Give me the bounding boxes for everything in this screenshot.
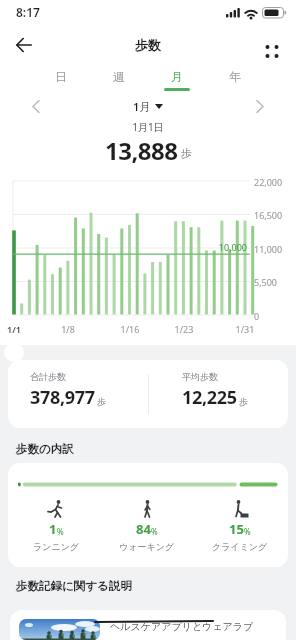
staticText: ランニング bbox=[33, 541, 80, 552]
button[interactable] bbox=[250, 96, 270, 116]
staticText: 1/16 bbox=[110, 323, 150, 335]
staticText: 月 bbox=[171, 69, 183, 84]
button[interactable]: 1月 bbox=[0, 96, 296, 116]
staticText: 12,225 bbox=[182, 385, 237, 410]
staticText: 1月1日 bbox=[0, 120, 296, 134]
button[interactable]: 年 bbox=[206, 62, 264, 90]
staticText: 歩 bbox=[181, 146, 192, 160]
staticText: 1/8 bbox=[48, 323, 88, 335]
staticText: 22,000 bbox=[254, 176, 283, 188]
staticText: 歩 bbox=[97, 396, 106, 407]
button[interactable] bbox=[258, 38, 286, 64]
staticText: 歩数記録に関する説明 bbox=[16, 579, 132, 593]
staticText: % bbox=[57, 526, 64, 537]
staticText: 0 bbox=[254, 310, 260, 322]
staticText: 合計歩数 bbox=[30, 371, 66, 382]
staticText: 1 bbox=[49, 520, 57, 538]
staticText: % bbox=[244, 526, 251, 537]
staticText: 13,888 bbox=[105, 134, 178, 166]
staticText: 5,500 bbox=[254, 276, 278, 288]
staticText: ウォーキング bbox=[119, 541, 175, 552]
button[interactable]: ヘルスケアアプリとウェアラブ bbox=[10, 610, 286, 640]
staticText: 年 bbox=[229, 69, 241, 84]
button[interactable] bbox=[8, 31, 40, 59]
staticText: 週 bbox=[113, 69, 125, 84]
staticText: 8:17 bbox=[16, 4, 40, 20]
staticText: 84 bbox=[136, 520, 151, 538]
staticText: 378,977 bbox=[30, 385, 95, 410]
staticText: 日 bbox=[55, 69, 67, 84]
staticText: 10,000 bbox=[207, 241, 247, 253]
staticText: 歩数の内訳 bbox=[16, 442, 74, 456]
staticText: ヘルスケアアプリとウェアラブ bbox=[110, 620, 254, 633]
button[interactable]: 日 bbox=[32, 62, 90, 90]
staticText: 11,000 bbox=[254, 243, 283, 255]
button[interactable]: 週 bbox=[90, 62, 148, 90]
staticText: 1/1 bbox=[7, 323, 21, 335]
staticText: 歩 bbox=[239, 396, 248, 407]
staticText: 1/31 bbox=[225, 323, 265, 335]
staticText: 歩数 bbox=[0, 37, 296, 53]
staticText: クライミング bbox=[212, 541, 268, 552]
staticText: 1/23 bbox=[164, 323, 204, 335]
button[interactable]: 月 bbox=[148, 62, 206, 90]
staticText: 16,500 bbox=[254, 209, 283, 221]
staticText: 平均歩数 bbox=[182, 371, 218, 382]
staticText: 15 bbox=[229, 520, 244, 538]
staticText: % bbox=[151, 526, 158, 537]
staticText: 1月 bbox=[133, 99, 151, 114]
button[interactable] bbox=[26, 96, 46, 116]
